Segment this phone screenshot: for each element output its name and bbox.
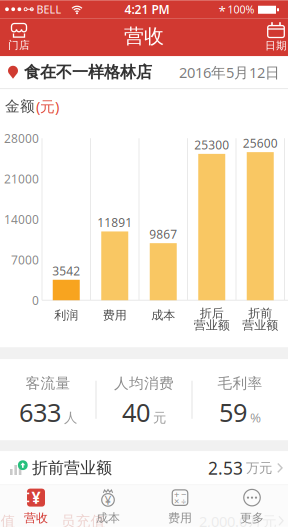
staticText: 值 — [0, 512, 15, 527]
staticText: 人均消费 — [114, 374, 174, 392]
staticText: % — [250, 408, 261, 426]
staticText: 折前营业额 — [32, 458, 112, 478]
staticText: 9867 — [149, 226, 177, 242]
staticText: 3542 — [52, 263, 80, 279]
staticText: 0 — [32, 292, 39, 308]
staticText: 毛利率 — [217, 374, 262, 392]
staticText: 更多 — [240, 511, 264, 525]
staticText: × ÷ — [174, 495, 186, 507]
staticText: 59 — [219, 395, 247, 429]
staticText: 食在不一样格林店 — [24, 62, 152, 82]
staticText: BELL — [36, 2, 61, 16]
staticText: 成本 — [151, 308, 175, 323]
staticText: 费用 — [103, 308, 127, 323]
staticText: 28000 — [4, 130, 39, 146]
staticText: + − — [174, 488, 186, 501]
staticText: 门店 — [8, 39, 30, 52]
staticText: 利润 — [54, 308, 78, 323]
staticText: 25300 — [194, 137, 229, 153]
staticText: 营业额 — [194, 318, 230, 333]
staticText: 7000 — [11, 252, 39, 268]
staticText: 折后 — [200, 306, 224, 321]
staticText: 2016年5月12日 — [179, 62, 280, 82]
staticText: 25600 — [243, 135, 278, 151]
staticText: 11891 — [97, 214, 132, 230]
staticText: (元) — [36, 96, 59, 116]
staticText: ¥ — [31, 487, 40, 508]
staticText: 日期 — [265, 39, 287, 52]
button[interactable]: ¥ — [0, 485, 72, 527]
button[interactable]: 更多 — [216, 485, 288, 527]
staticText: 成本 — [96, 511, 120, 525]
button[interactable]: 门店 — [8, 23, 30, 52]
staticText: 营业额 — [242, 318, 278, 333]
staticText: 费用 — [168, 511, 192, 525]
staticText: * — [218, 2, 225, 20]
staticText: 人 — [64, 410, 77, 426]
button[interactable]: ¥ — [72, 485, 144, 527]
staticText: 40 — [122, 395, 150, 429]
staticText: 员充值 — [60, 512, 105, 527]
staticText: 金额 — [5, 97, 35, 115]
button[interactable]: 日期 — [265, 22, 287, 52]
staticText: 4:21 PM — [124, 1, 169, 17]
staticText: 折前 — [248, 306, 272, 321]
staticText: 2.53 — [208, 456, 243, 479]
staticText: 万元 — [246, 460, 272, 476]
staticText: 633 — [19, 395, 61, 429]
staticText: 元 — [153, 410, 166, 426]
staticText: 21000 — [4, 171, 39, 187]
staticText: 营收 — [124, 24, 164, 49]
staticText: 客流量 — [25, 374, 70, 392]
button[interactable]: + − — [144, 485, 216, 527]
button[interactable]: 折前营业额 — [0, 451, 288, 485]
staticText: ¥ — [104, 492, 111, 508]
staticText: 14000 — [4, 211, 39, 227]
staticText: 100% — [227, 2, 254, 16]
staticText: 2,000.0万元 — [199, 511, 277, 527]
staticText: 营收 — [24, 511, 48, 525]
